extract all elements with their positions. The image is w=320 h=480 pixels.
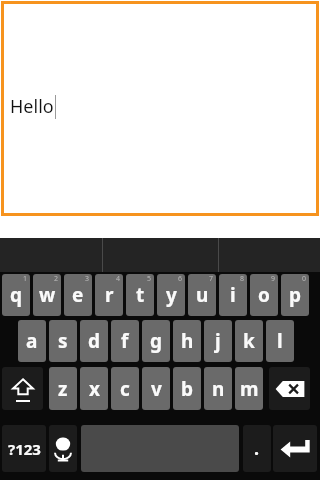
staticText: ?123 <box>8 439 41 459</box>
staticText: l <box>277 328 283 354</box>
staticText: m <box>240 376 259 402</box>
staticText: . <box>254 436 260 461</box>
button[interactable]: i <box>219 274 247 316</box>
button[interactable]: o <box>250 274 278 316</box>
button[interactable]: b <box>173 367 201 410</box>
staticText: q <box>10 282 23 308</box>
staticText: s <box>58 328 68 354</box>
staticText: o <box>258 282 270 308</box>
staticText: e <box>72 282 84 308</box>
button[interactable]: Backspace <box>269 367 310 410</box>
staticText: 3 <box>85 274 90 284</box>
button[interactable]: c <box>111 367 139 410</box>
button[interactable]: w <box>33 274 61 316</box>
button[interactable]: r <box>95 274 123 316</box>
button[interactable]: f <box>111 320 139 362</box>
button[interactable]: z <box>49 367 77 410</box>
button[interactable]: l <box>266 320 294 362</box>
staticText: 8 <box>240 274 245 284</box>
staticText: 7 <box>209 274 214 284</box>
button[interactable]: a <box>18 320 46 362</box>
button[interactable]: Shift <box>2 367 43 410</box>
staticText: n <box>212 376 225 402</box>
staticText: p <box>289 282 302 308</box>
staticText: k <box>243 328 255 354</box>
button[interactable]: p <box>281 274 309 316</box>
staticText: 2 <box>54 274 59 284</box>
staticText: v <box>151 376 162 402</box>
button[interactable]: n <box>204 367 232 410</box>
staticText: y <box>166 282 177 308</box>
staticText: c <box>120 376 130 402</box>
staticText: u <box>196 282 209 308</box>
staticText: t <box>136 282 145 308</box>
button[interactable]: y <box>157 274 185 316</box>
button[interactable]: t <box>126 274 154 316</box>
staticText: h <box>181 328 194 354</box>
staticText: z <box>58 376 68 402</box>
staticText: b <box>181 376 194 402</box>
button[interactable]: j <box>204 320 232 362</box>
button[interactable]: u <box>188 274 216 316</box>
button[interactable]: x <box>80 367 108 410</box>
staticText: 1 <box>23 274 28 284</box>
staticText: 6 <box>178 274 183 284</box>
staticText: 9 <box>271 274 276 284</box>
button[interactable]: s <box>49 320 77 362</box>
button[interactable]: d <box>80 320 108 362</box>
button[interactable]: e <box>64 274 92 316</box>
button[interactable]: m <box>235 367 263 410</box>
staticText: 5 <box>147 274 152 284</box>
button[interactable]: Enter <box>273 425 317 472</box>
button[interactable]: Voice input <box>49 425 77 472</box>
staticText: f <box>121 328 129 354</box>
staticText: i <box>230 282 236 308</box>
staticText: r <box>105 282 114 308</box>
staticText: d <box>88 328 101 354</box>
button[interactable]: Hello <box>1 1 319 216</box>
button[interactable]: q <box>2 274 30 316</box>
button[interactable]: k <box>235 320 263 362</box>
staticText: j <box>215 328 221 354</box>
staticText: g <box>150 328 163 354</box>
staticText: w <box>39 282 56 308</box>
button[interactable]: ?123 <box>2 425 46 472</box>
staticText: 0 <box>302 274 307 284</box>
staticText: Hello <box>10 94 54 119</box>
staticText: a <box>26 328 38 354</box>
button[interactable]: v <box>142 367 170 410</box>
staticText: x <box>89 376 100 402</box>
button[interactable]: . <box>243 425 271 472</box>
button[interactable]: h <box>173 320 201 362</box>
staticText: 4 <box>116 274 121 284</box>
button[interactable]: g <box>142 320 170 362</box>
